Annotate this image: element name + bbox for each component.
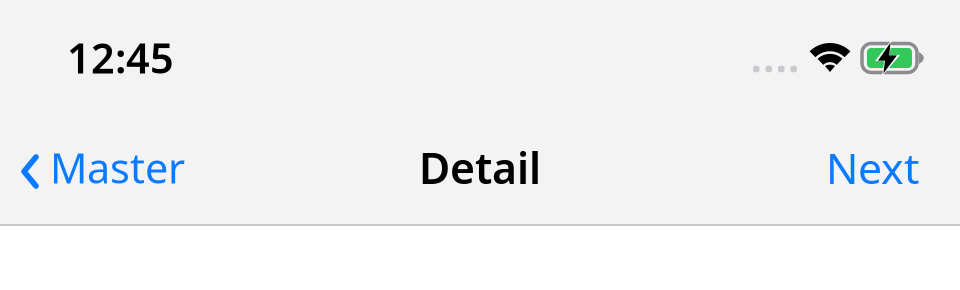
- button[interactable]: Next: [806, 115, 939, 220]
- staticText: Next: [826, 139, 919, 196]
- button[interactable]: Master: [0, 115, 201, 220]
- staticText: Detail: [419, 139, 541, 196]
- staticText: 12:45: [67, 30, 174, 85]
- staticText: Master: [50, 140, 185, 195]
